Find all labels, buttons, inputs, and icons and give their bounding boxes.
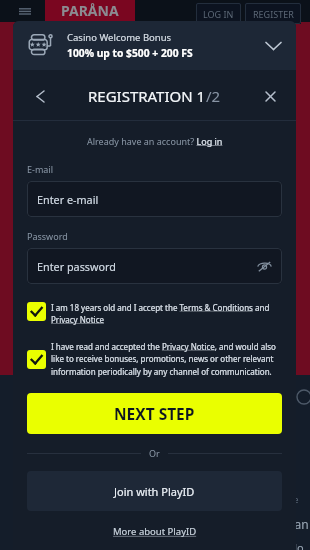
staticText: I am 18 years old and I accept the Terms…: [51, 302, 282, 325]
staticText: Or: [149, 447, 160, 459]
staticText: LOG IN: [203, 8, 234, 20]
staticText: Enter password: [37, 259, 116, 274]
button[interactable]: Show password: [255, 257, 273, 275]
button[interactable]: Join with PlayID: [27, 471, 282, 511]
staticText: San: [288, 516, 309, 532]
staticText: I have read and accepted the Privacy Not…: [51, 341, 282, 377]
staticText: Casino Welcome Bonus: [67, 31, 172, 44]
staticText: /2: [206, 86, 221, 106]
button[interactable]: REGISTER: [245, 3, 301, 24]
staticText: PARÅNA: [61, 1, 119, 20]
staticText: NEXT STEP: [114, 403, 195, 424]
staticText: elo: [288, 540, 304, 550]
button[interactable]: Enter password: [27, 248, 282, 284]
staticText: 100% up to $500 + 200 FS: [67, 46, 193, 60]
staticText: Enter e-mail: [37, 192, 99, 207]
button[interactable]: Close: [258, 84, 282, 108]
button[interactable]: LOG IN: [196, 3, 241, 24]
staticText: E-mail: [27, 163, 54, 175]
button[interactable]: Menu: [16, 0, 34, 22]
staticText: Join with PlayID: [114, 484, 195, 499]
button[interactable]: Already have an account? Log in: [87, 135, 223, 147]
button[interactable]: Casino Welcome Bonus: [13, 21, 296, 70]
staticText: REGISTER: [253, 8, 294, 20]
staticText: Re: [288, 493, 299, 505]
staticText: REGISTRATION 1: [88, 86, 206, 106]
button[interactable]: Enter e-mail: [27, 181, 282, 217]
button[interactable]: More about PlayID: [113, 525, 197, 538]
button[interactable]: Back: [27, 83, 53, 109]
button[interactable]: I have read and accepted the Privacy Not…: [27, 341, 282, 377]
button[interactable]: Expand bonus: [260, 33, 286, 59]
staticText: Password: [27, 230, 68, 242]
button[interactable]: I am 18 years old and I accept the Terms…: [27, 302, 282, 325]
button[interactable]: NEXT STEP: [27, 393, 282, 434]
